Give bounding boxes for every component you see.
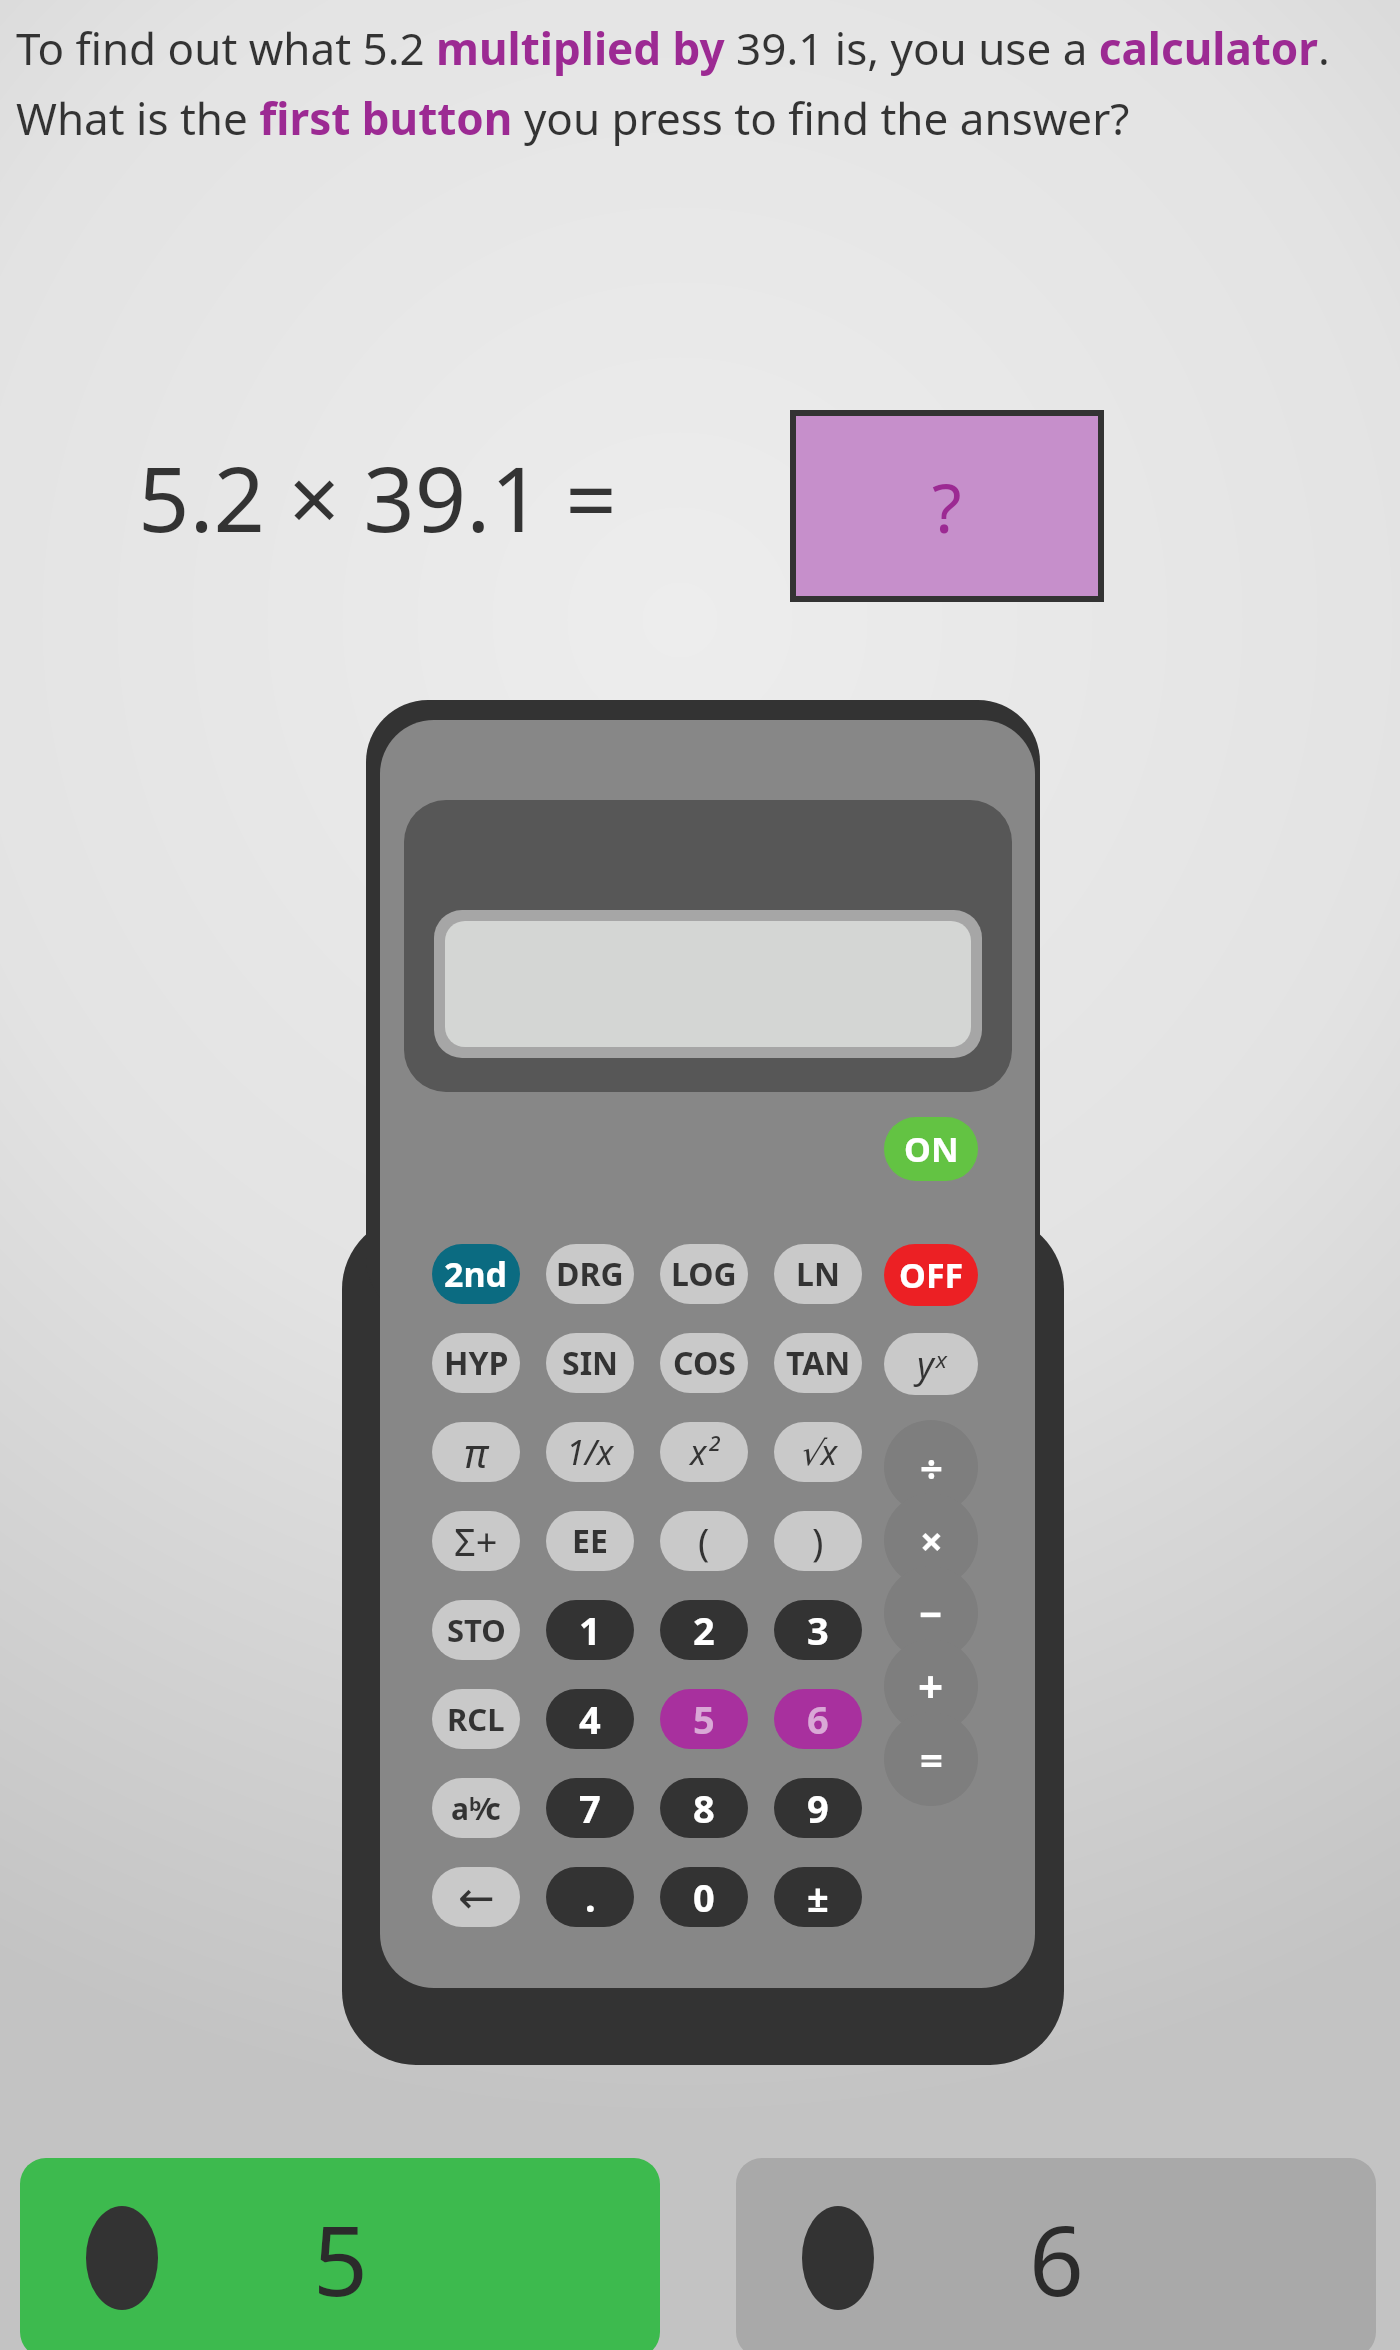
button[interactable]: ← <box>432 1867 520 1927</box>
button[interactable]: aᵇ⁄c <box>432 1778 520 1838</box>
button[interactable]: 9 <box>774 1778 862 1838</box>
button[interactable]: 2nd <box>432 1244 520 1304</box>
staticText: × <box>920 1513 943 1567</box>
button[interactable]: x² <box>660 1422 748 1482</box>
button[interactable]: TAN <box>774 1333 862 1393</box>
staticText: − <box>919 1586 943 1640</box>
staticText: ? <box>932 460 962 553</box>
button[interactable]: 2 <box>660 1600 748 1660</box>
button[interactable]: Answer box <box>796 416 1098 596</box>
staticText: yˣ <box>917 1340 946 1389</box>
staticText: LN <box>796 1252 840 1296</box>
staticText: RCL <box>447 1698 505 1740</box>
staticText: Σ+ <box>454 1515 498 1567</box>
button[interactable]: × <box>884 1493 978 1587</box>
staticText: 7 <box>579 1782 601 1834</box>
staticText: . <box>585 1871 596 1923</box>
staticText: 8 <box>693 1782 715 1834</box>
button[interactable]: √x <box>774 1422 862 1482</box>
staticText: 3 <box>807 1604 829 1656</box>
button[interactable]: ± <box>774 1867 862 1927</box>
button[interactable]: π <box>432 1422 520 1482</box>
button[interactable]: SIN <box>546 1333 634 1393</box>
button[interactable]: ÷ <box>884 1420 978 1514</box>
staticText: 5.2 × 39.1 = <box>138 436 617 559</box>
staticText: √x <box>799 1429 838 1475</box>
button[interactable]: LOG <box>660 1244 748 1304</box>
button[interactable]: ON <box>884 1117 978 1181</box>
staticText: = <box>920 1732 943 1786</box>
staticText: 9 <box>807 1782 829 1834</box>
staticText: COS <box>673 1341 736 1385</box>
button[interactable]: 5 <box>20 2158 660 2350</box>
button[interactable]: 3 <box>774 1600 862 1660</box>
staticText: ON <box>904 1126 959 1172</box>
staticText: ± <box>807 1871 829 1923</box>
button[interactable]: LN <box>774 1244 862 1304</box>
button[interactable]: 5 <box>660 1689 748 1749</box>
staticText: 6 <box>807 1693 829 1745</box>
button[interactable]: STO <box>432 1600 520 1660</box>
button[interactable]: = <box>884 1712 978 1806</box>
staticText: ) <box>812 1515 824 1567</box>
staticText: HYP <box>444 1341 509 1385</box>
button[interactable]: yˣ <box>884 1333 978 1395</box>
staticText: ( <box>698 1515 710 1567</box>
staticText: ← <box>458 1872 495 1923</box>
button[interactable]: 7 <box>546 1778 634 1838</box>
button[interactable]: COS <box>660 1333 748 1393</box>
button[interactable]: DRG <box>546 1244 634 1304</box>
staticText: EE <box>572 1519 608 1563</box>
staticText: To find out what 5.2 multiplied by 39.1 … <box>16 18 1386 148</box>
button[interactable]: . <box>546 1867 634 1927</box>
staticText: + <box>918 1656 944 1716</box>
button[interactable]: 4 <box>546 1689 634 1749</box>
staticText: aᵇ⁄c <box>451 1788 501 1829</box>
staticText: STO <box>447 1609 506 1651</box>
staticText: DRG <box>556 1252 624 1296</box>
staticText: 5 <box>313 2193 368 2324</box>
button[interactable]: OFF <box>884 1244 978 1306</box>
staticText: 2nd <box>444 1251 508 1297</box>
staticText: 0 <box>693 1871 715 1923</box>
button[interactable]: 1/x <box>546 1422 634 1482</box>
staticText: LOG <box>671 1252 737 1296</box>
button[interactable]: HYP <box>432 1333 520 1393</box>
button[interactable]: 8 <box>660 1778 748 1838</box>
button[interactable]: 1 <box>546 1600 634 1660</box>
button[interactable]: 6 <box>774 1689 862 1749</box>
staticText: SIN <box>562 1341 619 1385</box>
staticText: 6 <box>1029 2193 1084 2324</box>
staticText: ÷ <box>920 1440 943 1494</box>
button[interactable]: EE <box>546 1511 634 1571</box>
button[interactable]: ) <box>774 1511 862 1571</box>
staticText: 1 <box>579 1604 601 1656</box>
staticText: 5 <box>693 1693 715 1745</box>
staticText: 4 <box>579 1693 601 1745</box>
button[interactable]: ( <box>660 1511 748 1571</box>
button[interactable]: Σ+ <box>432 1511 520 1571</box>
staticText: 1/x <box>566 1429 614 1475</box>
staticText: TAN <box>786 1341 851 1385</box>
button[interactable]: + <box>884 1639 978 1733</box>
staticText: OFF <box>899 1252 964 1298</box>
staticText: π <box>464 1425 488 1479</box>
button[interactable]: 6 <box>736 2158 1376 2350</box>
button[interactable]: RCL <box>432 1689 520 1749</box>
staticText: 2 <box>693 1604 715 1656</box>
button[interactable]: − <box>884 1566 978 1660</box>
button[interactable]: 0 <box>660 1867 748 1927</box>
staticText: x² <box>690 1429 719 1475</box>
